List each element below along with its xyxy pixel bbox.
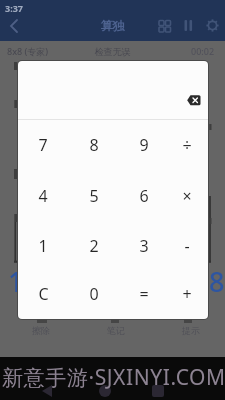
staticText: 算独 xyxy=(0,18,225,33)
staticText: 8 xyxy=(89,134,99,154)
button[interactable]: 5 xyxy=(78,185,110,205)
button[interactable] xyxy=(4,16,24,36)
staticText: - xyxy=(184,235,190,255)
staticText: 1 xyxy=(8,263,24,300)
staticText: 8 xyxy=(209,263,225,300)
staticText: × xyxy=(182,185,192,205)
button[interactable]: 9 xyxy=(128,134,160,154)
staticText: 6 xyxy=(139,185,149,205)
button[interactable]: × xyxy=(171,185,203,205)
button[interactable] xyxy=(206,19,219,32)
button[interactable]: C xyxy=(27,283,59,303)
button[interactable]: 3 xyxy=(128,235,160,255)
button[interactable]: 8 xyxy=(78,134,110,154)
staticText: 8x8 (专家) xyxy=(7,45,49,57)
button[interactable]: - xyxy=(171,235,203,255)
staticText: 9 xyxy=(139,134,149,154)
button[interactable] xyxy=(186,94,202,107)
button[interactable]: 2 xyxy=(78,235,110,255)
staticText: 2 xyxy=(89,235,99,255)
staticText: 笔记 xyxy=(107,325,125,336)
button[interactable]: = xyxy=(128,283,160,303)
staticText: 4 xyxy=(38,185,48,205)
staticText: 0 xyxy=(89,283,99,303)
button[interactable] xyxy=(182,19,195,32)
staticText: 检查无误 xyxy=(0,46,225,57)
staticText: 擦除 xyxy=(32,325,50,336)
button[interactable]: 1 xyxy=(27,235,59,255)
button[interactable]: 0 xyxy=(78,283,110,303)
button[interactable]: 擦除 xyxy=(3,323,78,337)
staticText: 3 xyxy=(139,235,149,255)
staticText: C xyxy=(38,283,49,303)
button[interactable] xyxy=(158,19,171,32)
staticText: ÷ xyxy=(182,134,192,154)
staticText: 00:02 xyxy=(191,45,215,57)
button[interactable]: ÷ xyxy=(171,134,203,154)
button[interactable]: 6 xyxy=(128,185,160,205)
staticText: = xyxy=(139,283,149,303)
button[interactable]: 7 xyxy=(27,134,59,154)
button[interactable]: + xyxy=(171,283,203,303)
button[interactable]: 4 xyxy=(27,185,59,205)
staticText: 7 xyxy=(38,134,48,154)
staticText: 提示 xyxy=(182,325,200,336)
staticText: 3:37 xyxy=(5,2,23,14)
staticText: 1 xyxy=(38,235,48,255)
staticText: + xyxy=(182,283,192,303)
staticText: 5 xyxy=(89,185,99,205)
staticText: 新意手游·SJXINYI.COM xyxy=(2,363,225,392)
